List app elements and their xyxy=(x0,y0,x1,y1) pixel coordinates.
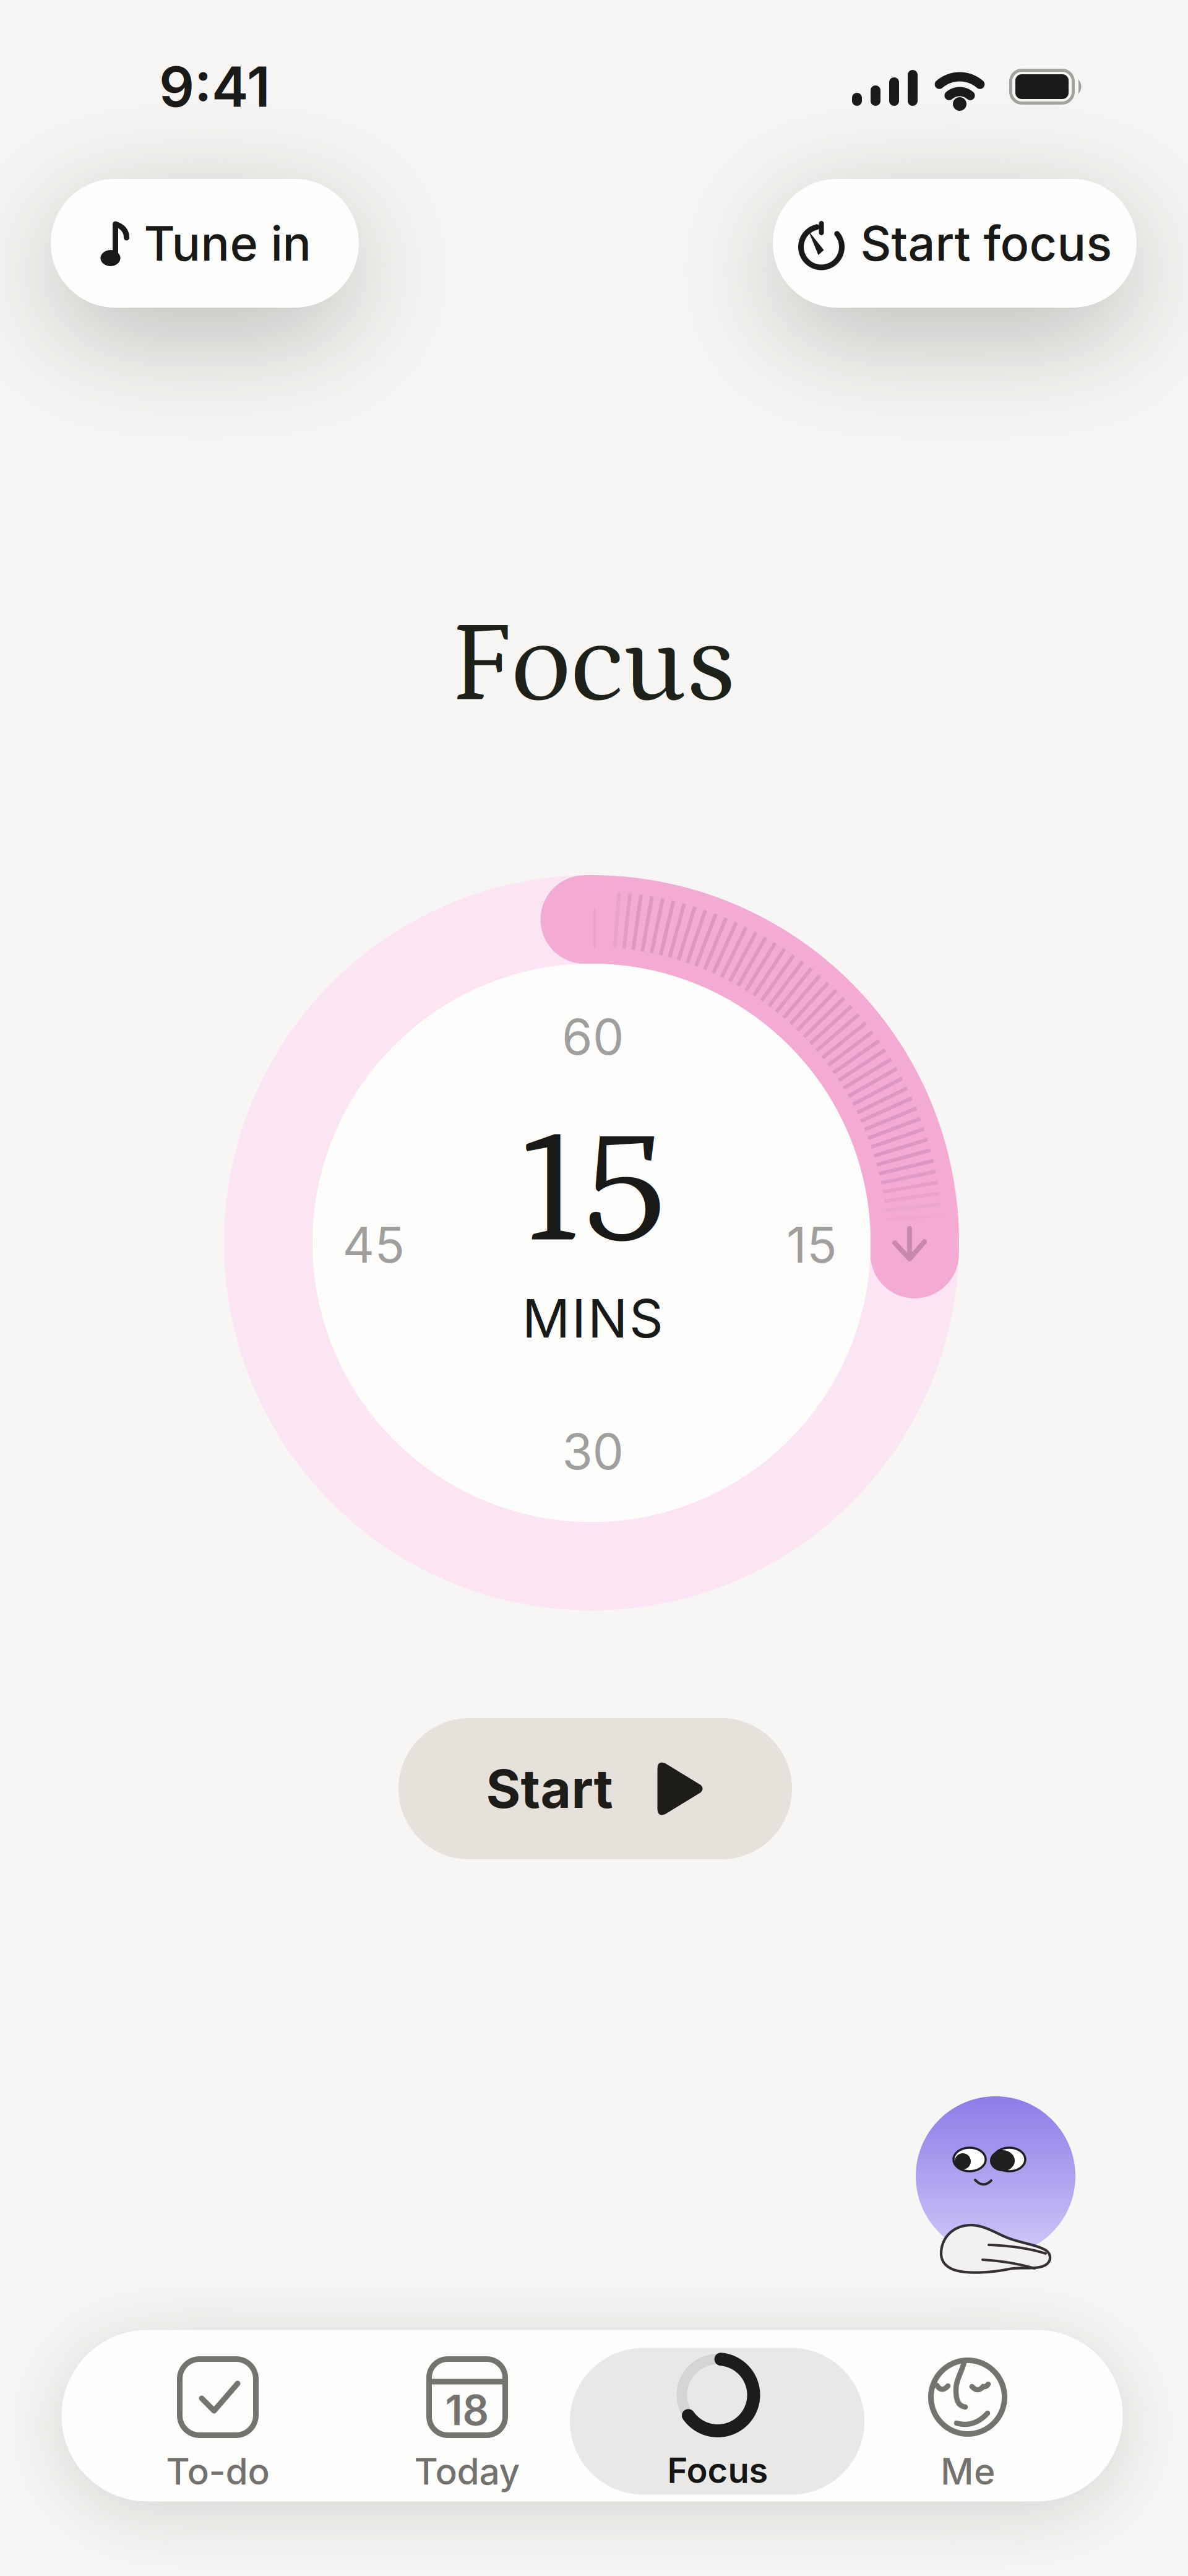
button[interactable]: Start xyxy=(398,1718,792,1859)
button[interactable]: Me xyxy=(875,2329,1061,2490)
staticText: 30 xyxy=(562,1421,623,1481)
staticText: 45 xyxy=(342,1215,405,1275)
staticText: Tune in xyxy=(144,214,312,272)
button[interactable]: Tune in xyxy=(51,179,359,308)
button[interactable]: 18 xyxy=(374,2329,560,2490)
staticText: To-do xyxy=(166,2449,269,2493)
staticText: 15 xyxy=(519,1101,669,1283)
staticText: 15 xyxy=(786,1215,837,1275)
staticText: Focus xyxy=(450,601,735,730)
staticText: 9:41 xyxy=(159,53,270,120)
button[interactable]: Focus xyxy=(570,2348,864,2495)
staticText: Start focus xyxy=(860,214,1112,272)
staticText: Today xyxy=(414,2449,520,2493)
button[interactable]: Start focus xyxy=(773,179,1137,308)
staticText: MINS xyxy=(522,1286,663,1350)
staticText: 18 xyxy=(445,2385,489,2435)
staticText: Me xyxy=(940,2449,995,2493)
staticText: Start xyxy=(486,1757,613,1821)
staticText: Focus xyxy=(667,2449,768,2491)
button[interactable]: To-do xyxy=(125,2329,311,2490)
staticText: 60 xyxy=(562,1007,624,1067)
